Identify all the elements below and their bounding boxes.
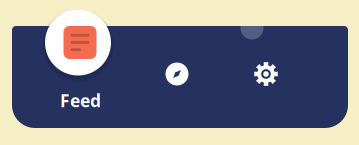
staticText: Feed [60,89,101,112]
button[interactable]: Settings [216,29,316,119]
button[interactable]: Feed [23,0,133,130]
button[interactable]: Explore [127,29,227,119]
